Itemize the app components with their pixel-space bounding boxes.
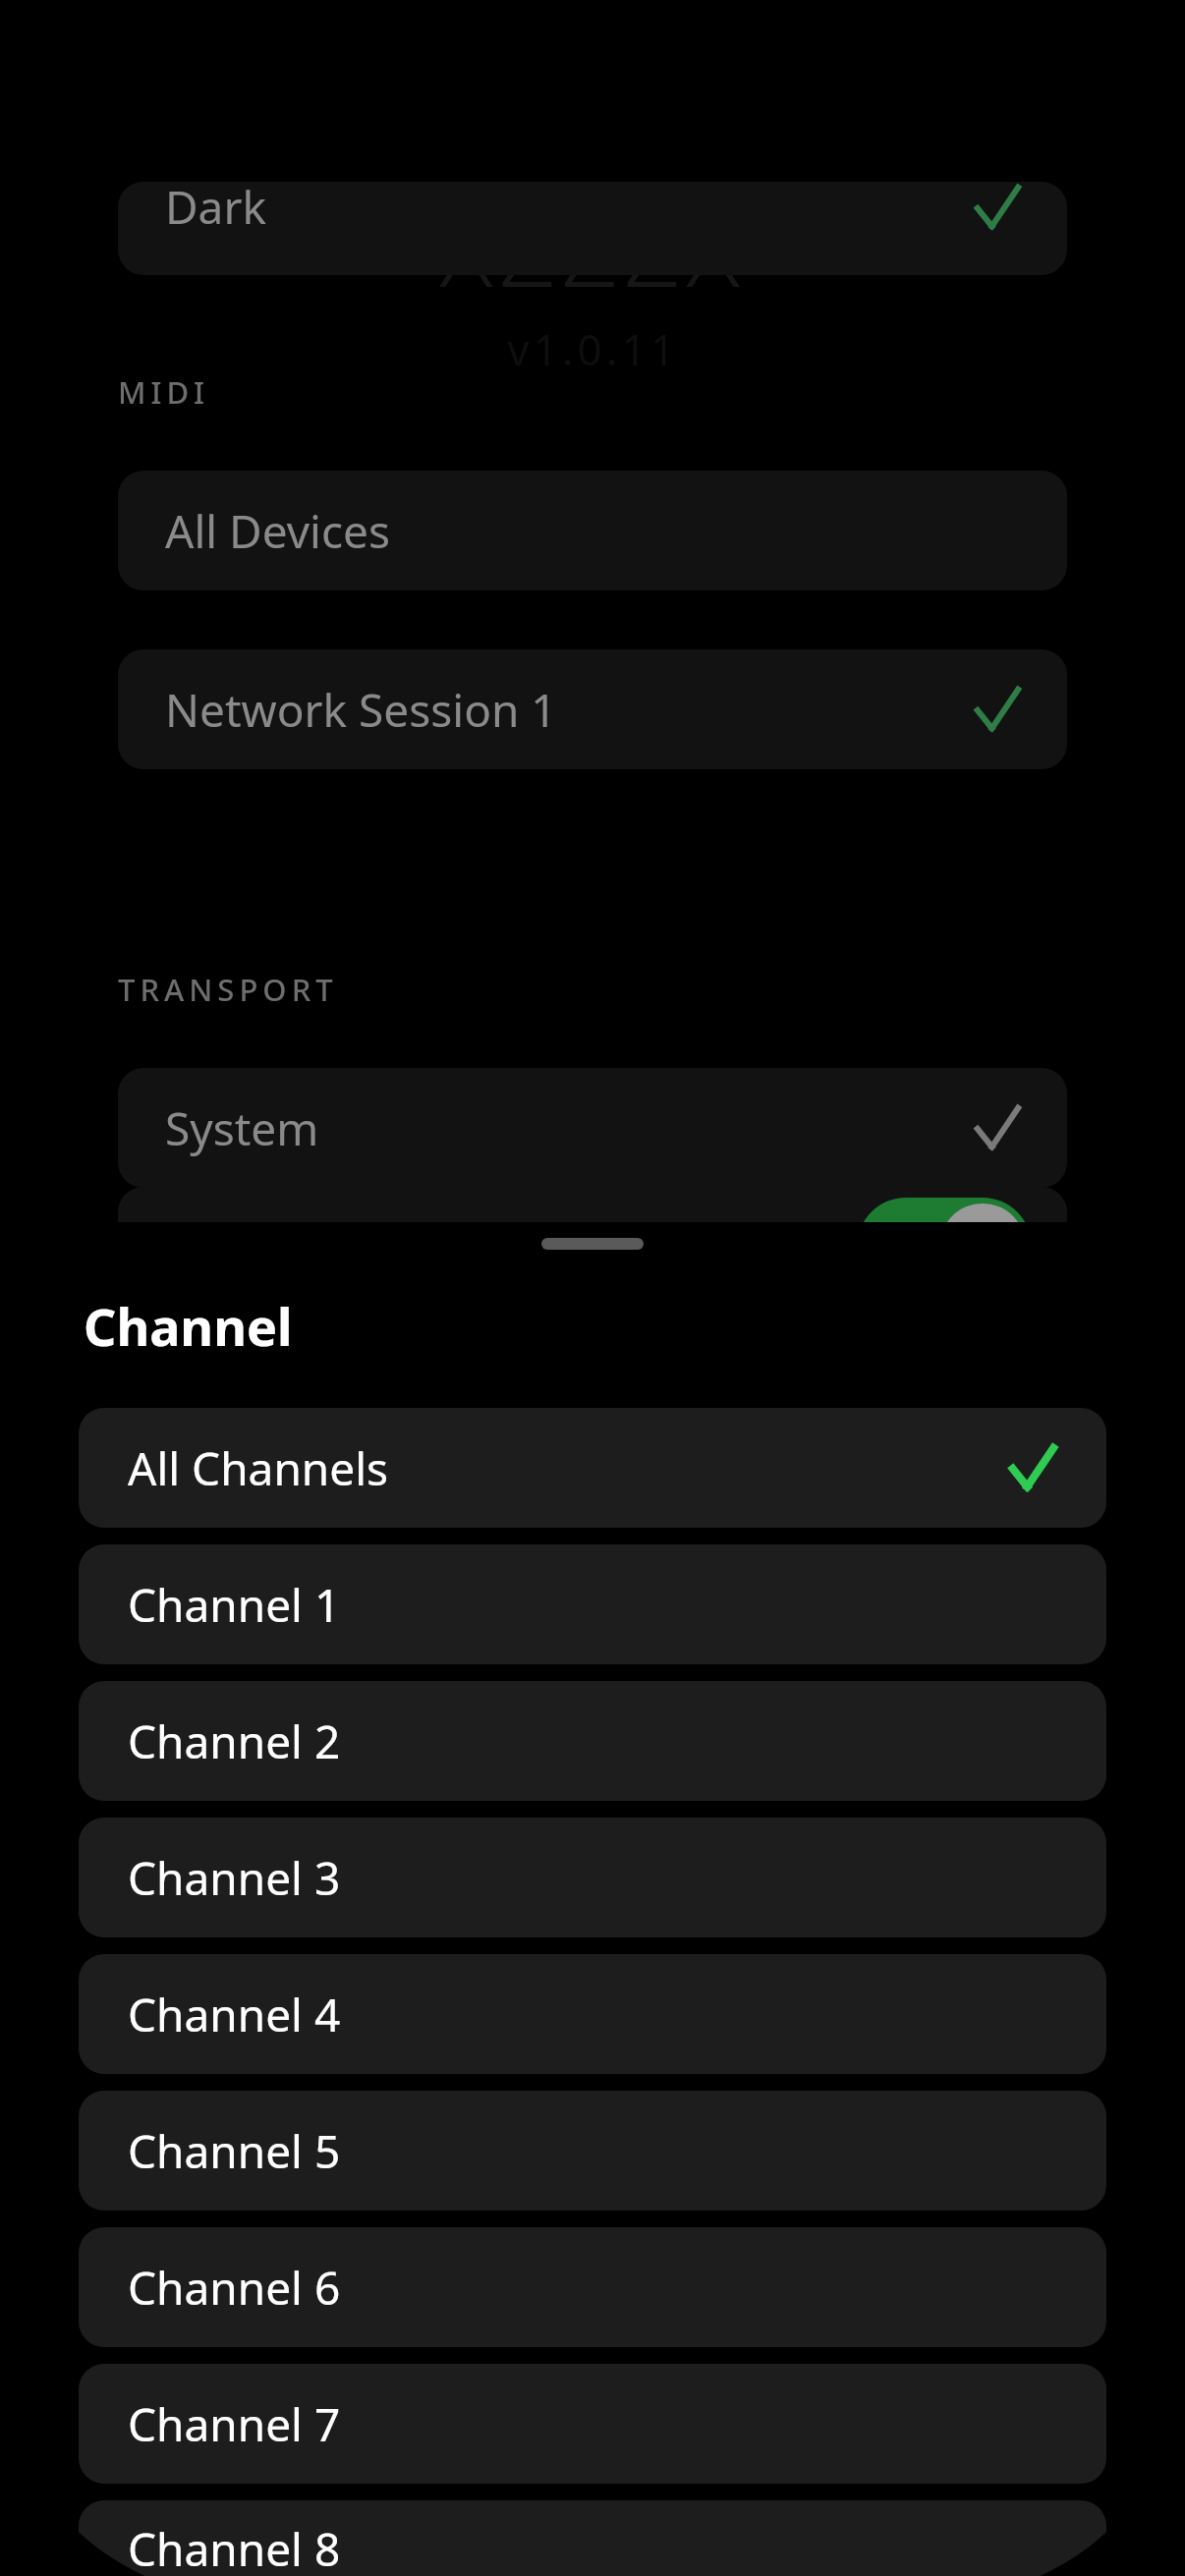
button[interactable]: System	[118, 1068, 1067, 1188]
button[interactable]: Dark	[118, 182, 1067, 275]
staticText: All Devices	[165, 500, 390, 562]
staticText: XZZZX	[439, 182, 746, 315]
button[interactable]: Network Session 1	[118, 649, 1067, 769]
staticText: 04	[525, 1071, 660, 1231]
staticText: MIDI	[118, 371, 210, 413]
staticText: Channel 1	[128, 1574, 341, 1636]
button[interactable]: Channel 7	[79, 2364, 1106, 2484]
staticText: Network Session 1	[165, 679, 557, 741]
staticText: Custom	[165, 1216, 329, 1278]
staticText: Channel 2	[128, 1710, 341, 1772]
staticText: Channel	[84, 1291, 293, 1361]
button[interactable]: All Devices	[118, 471, 1067, 590]
button[interactable]: Channel 2	[79, 1681, 1106, 1801]
button[interactable]: Channel 6	[79, 2227, 1106, 2347]
button[interactable]: Channel 8	[79, 2500, 1106, 2576]
staticText: Channel 8	[128, 2518, 341, 2576]
button[interactable]: Custom	[118, 1187, 1067, 1307]
button[interactable]: Channel 1	[79, 1544, 1106, 1664]
staticText: All Channels	[128, 1437, 389, 1499]
staticText: Channel 6	[128, 2257, 341, 2319]
staticText: Channel 4	[128, 1984, 341, 2045]
button[interactable]: All Channels	[79, 1408, 1106, 1528]
button[interactable]: Channel 5	[79, 2091, 1106, 2211]
staticText: v1.0.11	[507, 319, 679, 378]
staticText: System	[165, 1097, 319, 1159]
staticText: Channel 7	[128, 2393, 341, 2455]
staticText: Dark	[165, 182, 266, 238]
staticText: Channel 5	[128, 2120, 341, 2182]
staticText: TRANSPORT	[118, 969, 338, 1010]
button[interactable]: Channel 4	[79, 1954, 1106, 2074]
button[interactable]: Channel 3	[79, 1818, 1106, 1937]
staticText: Channel 3	[128, 1847, 341, 1909]
button[interactable]: Custom transport toggle	[857, 1198, 1032, 1296]
